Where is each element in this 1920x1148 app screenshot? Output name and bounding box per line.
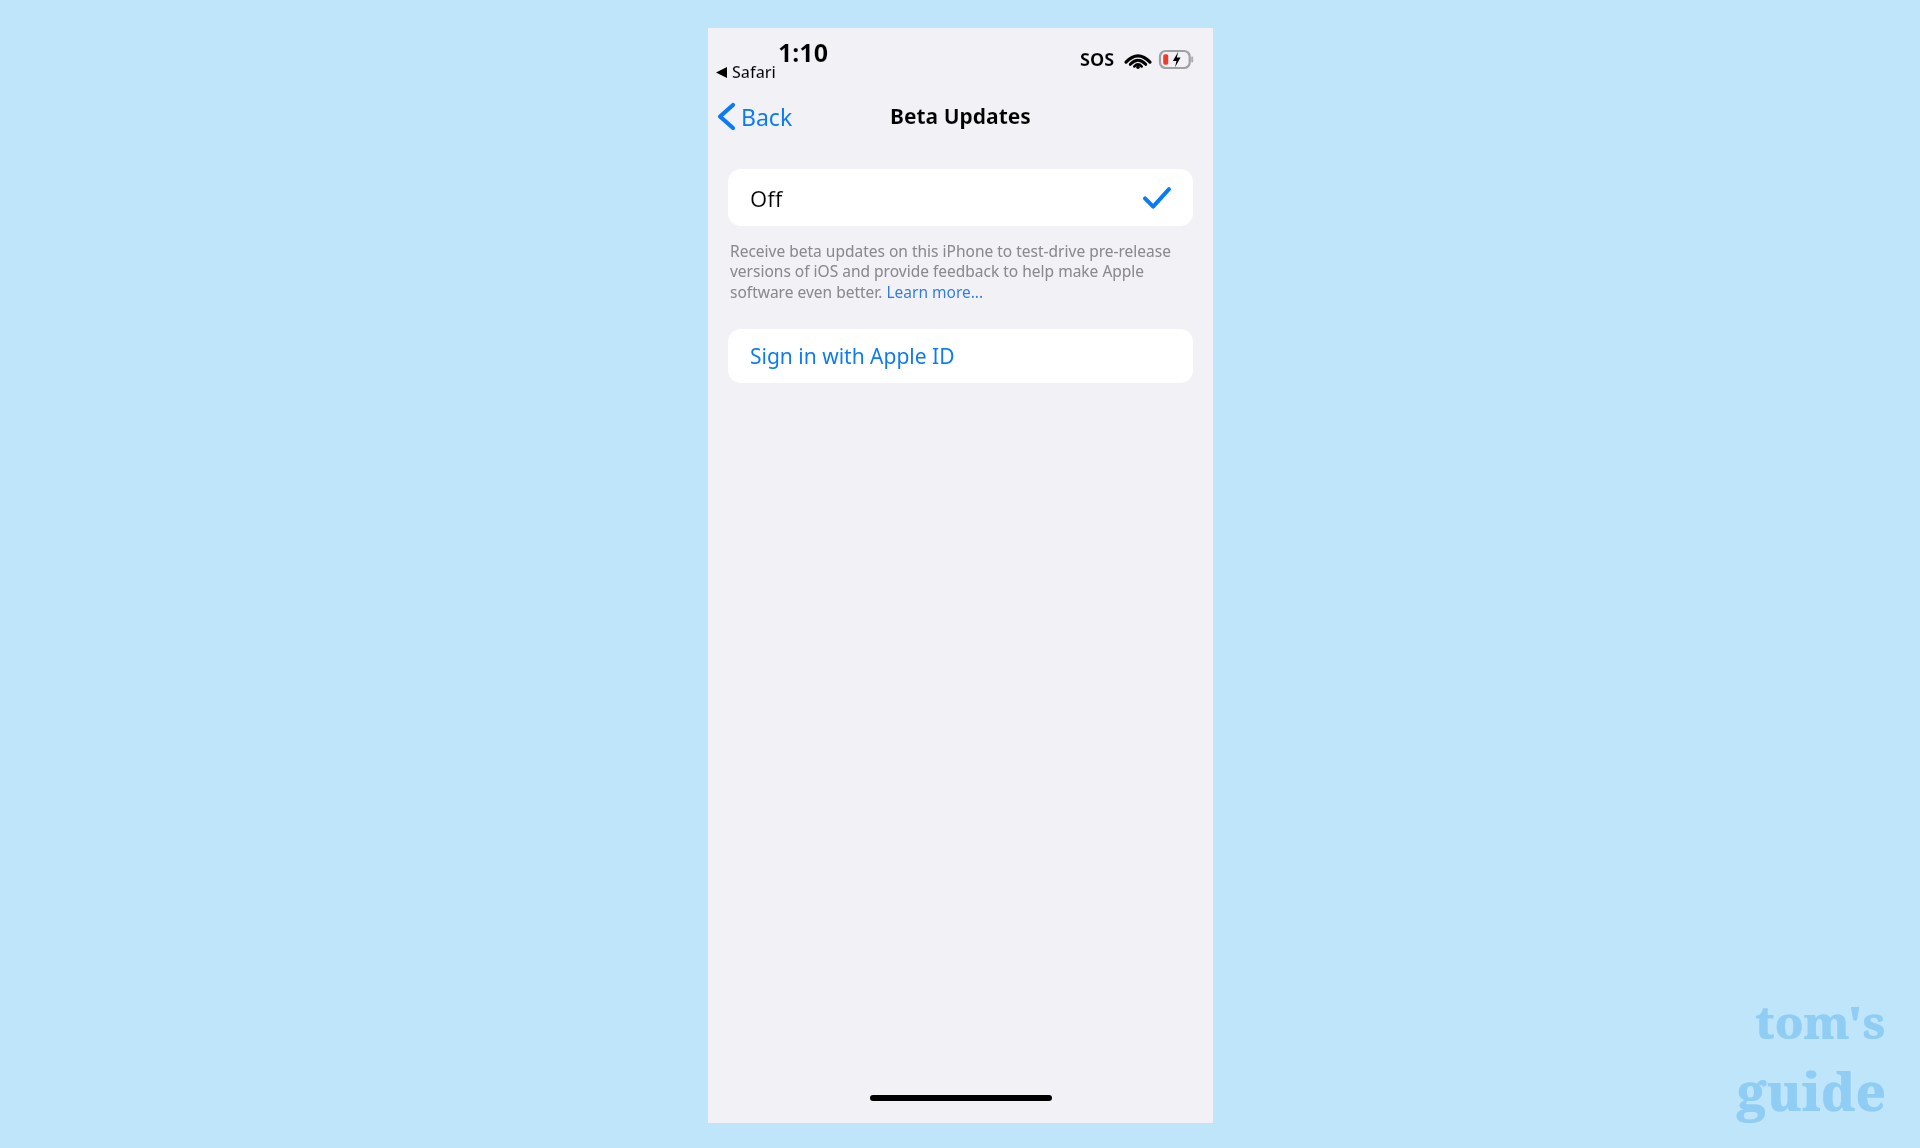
other: Wi-Fi bbox=[1126, 51, 1150, 69]
staticText: Sign in with Apple ID bbox=[750, 342, 955, 371]
staticText: Receive beta updates on this iPhone to t… bbox=[730, 240, 1191, 303]
staticText: Back bbox=[741, 101, 793, 132]
staticText: Safari bbox=[732, 61, 776, 83]
staticText: tom's bbox=[1755, 990, 1886, 1053]
staticText: guide bbox=[1737, 1055, 1886, 1126]
button[interactable]: Sign in with Apple ID bbox=[728, 329, 1193, 383]
staticText: Off bbox=[750, 183, 783, 213]
button[interactable]: Off bbox=[728, 169, 1193, 226]
button[interactable]: Safari bbox=[716, 61, 776, 83]
staticText: Beta Updates bbox=[890, 102, 1031, 131]
other: Battery charging bbox=[1160, 51, 1193, 68]
staticText: SOS bbox=[1080, 47, 1115, 72]
button[interactable]: Back bbox=[716, 95, 797, 138]
staticText: 1:10 bbox=[778, 35, 828, 69]
